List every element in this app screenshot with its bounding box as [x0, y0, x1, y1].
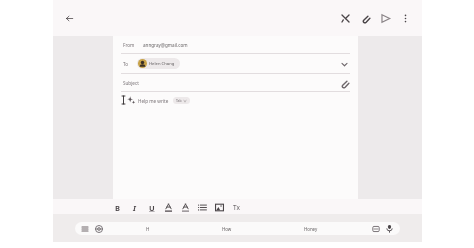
button[interactable]: Helen Chang: [137, 58, 180, 69]
button[interactable]: Highlight colour: [179, 201, 191, 213]
button[interactable]: To: [113, 54, 358, 73]
staticText: B: [115, 203, 120, 213]
staticText: Help me write: [138, 98, 169, 104]
staticText: Honey: [304, 226, 318, 232]
staticText: From: [123, 42, 135, 48]
staticText: How: [222, 226, 232, 232]
button[interactable]: Text colour: [162, 201, 174, 213]
button[interactable]: More options: [396, 9, 414, 27]
button[interactable]: Insert image: [213, 201, 225, 213]
button[interactable]: Keyboard menu: [80, 224, 90, 234]
button[interactable]: Clear formatting: [230, 201, 242, 213]
button[interactable]: How: [218, 226, 236, 232]
staticText: Tab: [176, 98, 182, 103]
button[interactable]: Subject: [113, 74, 358, 91]
button[interactable]: H: [142, 226, 154, 232]
button[interactable]: Undo: [336, 9, 354, 27]
staticText: To: [123, 61, 129, 67]
button[interactable]: Clipboard: [371, 224, 381, 234]
button[interactable]: Italic: [128, 201, 140, 213]
staticText: anngray@gmail.com: [143, 42, 188, 48]
staticText: H: [146, 226, 150, 232]
staticText: Tx: [233, 203, 240, 212]
button[interactable]: Bulleted list: [196, 201, 208, 213]
staticText: I: [133, 203, 136, 213]
staticText: Subject: [123, 80, 139, 86]
button[interactable]: Expand recipients: [338, 58, 350, 70]
button[interactable]: Attach: [356, 9, 374, 27]
button[interactable]: Attach file: [338, 77, 350, 89]
button[interactable]: Voice input: [384, 223, 395, 234]
button[interactable]: Underline: [145, 201, 157, 213]
staticText: Helen Chang: [149, 61, 175, 67]
button[interactable]: Honey: [300, 226, 322, 232]
button[interactable]: Back: [59, 8, 79, 28]
staticText: U: [149, 203, 155, 213]
button[interactable]: Bold: [111, 201, 123, 213]
button[interactable]: Send: [376, 9, 394, 27]
button[interactable]: Change language: [94, 224, 104, 234]
button[interactable]: Help me write: [138, 97, 190, 104]
button[interactable]: From: [113, 36, 358, 53]
